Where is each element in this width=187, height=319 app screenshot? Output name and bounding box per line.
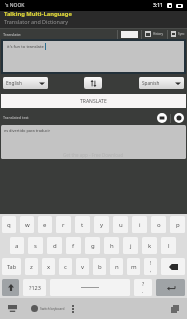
staticText: ! , — [150, 260, 152, 274]
staticText: English — [6, 80, 22, 86]
button[interactable]: k — [142, 237, 157, 254]
staticText: Sync — [178, 32, 185, 36]
button[interactable]: Backspace — [161, 258, 185, 275]
staticText: d — [53, 242, 57, 250]
staticText: b — [98, 263, 102, 271]
button[interactable]: o — [151, 216, 166, 233]
staticText: s — [34, 242, 37, 250]
staticText: e — [43, 221, 47, 229]
button[interactable]: History — [145, 31, 164, 37]
button[interactable]: r — [56, 216, 71, 233]
staticText: h — [110, 242, 114, 250]
button[interactable]: More options — [70, 304, 76, 313]
button[interactable]: English — [3, 77, 48, 89]
button[interactable]: c — [59, 258, 72, 275]
staticText: Spanish — [142, 80, 160, 86]
button[interactable]: Space — [50, 279, 130, 296]
staticText: 3:11 — [153, 2, 163, 9]
button[interactable]: p — [170, 216, 185, 233]
button[interactable]: f — [66, 237, 81, 254]
button[interactable]: g — [85, 237, 100, 254]
button[interactable]: n — [110, 258, 123, 275]
button[interactable]: w — [20, 216, 34, 233]
button[interactable]: Shift — [2, 279, 19, 296]
button[interactable]: b — [93, 258, 106, 275]
button[interactable]: h — [104, 237, 119, 254]
button[interactable]: Switch keyboard — [31, 305, 65, 312]
button[interactable]: y — [94, 216, 109, 233]
staticText: it's fun to translate — [7, 44, 44, 50]
button[interactable]: a — [10, 237, 24, 254]
button[interactable]: u — [113, 216, 128, 233]
button[interactable]: ?123 — [23, 279, 46, 296]
button[interactable]: z — [25, 258, 38, 275]
button[interactable]: Copy translation — [174, 113, 184, 123]
staticText: n — [115, 263, 119, 271]
staticText: Talking Multi-Language — [4, 10, 72, 18]
staticText: p — [176, 221, 180, 229]
button[interactable]: v — [76, 258, 89, 275]
button[interactable]: Speak translation — [157, 113, 167, 123]
button[interactable]: Tab — [2, 258, 21, 275]
staticText: w — [25, 221, 30, 229]
staticText: k — [148, 242, 152, 250]
staticText: i — [139, 221, 141, 229]
staticText: Get the app - Free Download — [63, 152, 124, 158]
staticText: l — [168, 242, 170, 250]
staticText: m — [131, 263, 137, 271]
staticText: v — [81, 263, 85, 271]
staticText: Tab — [7, 263, 17, 270]
staticText: Translate: — [3, 32, 22, 37]
button[interactable]: x — [42, 258, 55, 275]
button[interactable]: t — [75, 216, 90, 233]
staticText: Translator and Dictionary — [4, 18, 68, 25]
button[interactable]: TRANSLATE — [1, 94, 186, 108]
staticText: f — [72, 242, 75, 250]
staticText: es divertido para traducir — [4, 128, 51, 133]
button[interactable]: ? . — [134, 279, 152, 296]
button[interactable]: ! , — [144, 258, 157, 275]
staticText: ?123 — [29, 284, 41, 291]
button[interactable]: Enter — [156, 279, 185, 296]
staticText: o — [157, 221, 161, 229]
button[interactable]: j — [123, 237, 138, 254]
staticText: q — [7, 221, 11, 229]
button[interactable]: Recent apps — [171, 305, 179, 313]
button[interactable]: q — [2, 216, 16, 233]
staticText: Switch keyboard — [40, 307, 65, 311]
staticText: ? . — [142, 281, 145, 295]
button[interactable]: Spanish — [139, 77, 184, 89]
button[interactable]: d — [47, 237, 62, 254]
button[interactable]: Hide keyboard — [8, 305, 17, 312]
button[interactable]: Swap languages — [84, 77, 102, 89]
staticText: j — [130, 242, 132, 250]
staticText: 's NOOK — [5, 2, 25, 9]
staticText: y — [100, 221, 104, 229]
staticText: r — [62, 221, 65, 229]
button[interactable]: s — [28, 237, 43, 254]
staticText: History — [153, 32, 164, 36]
staticText: g — [91, 242, 95, 250]
staticText: Translated text — [3, 115, 29, 120]
button[interactable]: l — [161, 237, 176, 254]
staticText: TRANSLATE — [80, 98, 107, 105]
button[interactable]: i — [132, 216, 147, 233]
staticText: c — [64, 263, 67, 271]
staticText: z — [30, 263, 33, 271]
staticText: u — [119, 221, 123, 229]
staticText: a — [15, 242, 19, 250]
button[interactable]: Sync — [171, 31, 185, 37]
button[interactable]: m — [127, 258, 140, 275]
button[interactable]: e — [38, 216, 52, 233]
staticText: t — [81, 221, 84, 229]
staticText: x — [47, 263, 51, 271]
